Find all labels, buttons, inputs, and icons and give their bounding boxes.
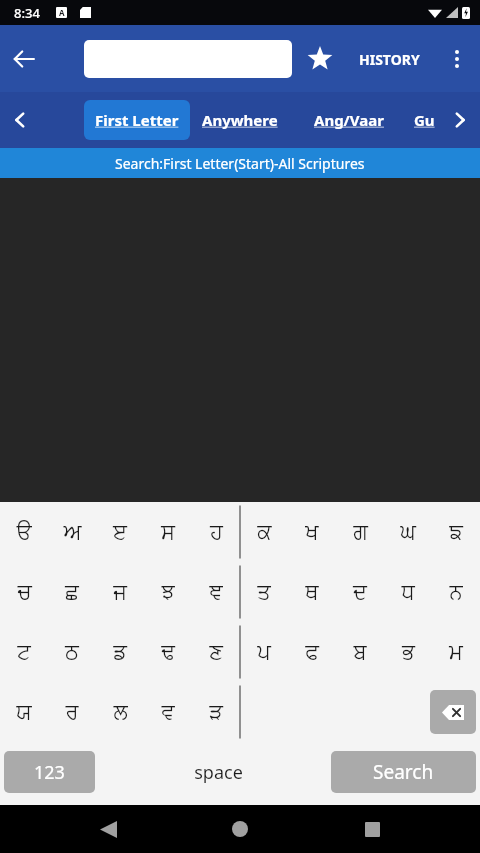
button[interactable]: ੲ: [96, 502, 144, 562]
button[interactable]: ਡ: [96, 622, 144, 682]
staticText: HISTORY: [359, 50, 420, 69]
button[interactable]: [84, 40, 292, 78]
button[interactable]: HISTORY: [344, 35, 434, 83]
button[interactable]: Previous tabs: [0, 100, 40, 140]
staticText: ਜ: [113, 582, 127, 603]
staticText: space: [194, 760, 243, 785]
button: [384, 682, 432, 742]
staticText: ਨ: [449, 582, 463, 603]
staticText: ਕ: [257, 522, 272, 543]
button[interactable]: ਪ: [240, 622, 288, 682]
staticText: ਹ: [210, 522, 223, 543]
button[interactable]: More options: [434, 36, 480, 82]
button[interactable]: ਥ: [288, 562, 336, 622]
staticText: Ang/Vaar: [314, 110, 384, 130]
button[interactable]: ਢ: [144, 622, 192, 682]
staticText: ਦ: [353, 582, 367, 603]
button[interactable]: ਖ: [288, 502, 336, 562]
button[interactable]: ਤ: [240, 562, 288, 622]
button[interactable]: 123: [4, 751, 95, 793]
button[interactable]: ਗ: [336, 502, 384, 562]
button[interactable]: ੜ: [192, 682, 240, 742]
button[interactable]: Search:First Letter(Start)-All Scripture…: [0, 148, 480, 178]
button[interactable]: ੳ: [0, 502, 48, 562]
button[interactable]: Search: [331, 751, 476, 793]
button: [240, 682, 288, 742]
button[interactable]: ਹ: [192, 502, 240, 562]
staticText: ਞ: [209, 582, 223, 603]
button[interactable]: ਘ: [384, 502, 432, 562]
button[interactable]: ਮ: [432, 622, 480, 682]
staticText: Search: [373, 759, 434, 785]
button[interactable]: ਰ: [48, 682, 96, 742]
button[interactable]: Favorites: [298, 37, 342, 81]
staticText: ਖ: [305, 522, 319, 543]
button[interactable]: ਬ: [336, 622, 384, 682]
staticText: A: [59, 7, 65, 18]
staticText: ਰ: [65, 702, 79, 723]
button[interactable]: ਭ: [384, 622, 432, 682]
button[interactable]: Anywhere: [190, 100, 290, 140]
button[interactable]: ਣ: [192, 622, 240, 682]
button[interactable]: ਟ: [0, 622, 48, 682]
button[interactable]: ਧ: [384, 562, 432, 622]
staticText: ਸ: [161, 522, 175, 543]
staticText: ਣ: [209, 642, 223, 663]
staticText: ਪ: [257, 642, 271, 663]
staticText: ੲ: [113, 522, 127, 543]
staticText: 8:34: [14, 4, 40, 22]
button[interactable]: space: [118, 748, 318, 796]
staticText: ਤ: [257, 582, 271, 603]
button[interactable]: ਯ: [0, 682, 48, 742]
button[interactable]: ਸ: [144, 502, 192, 562]
staticText: ਟ: [17, 642, 31, 663]
button[interactable]: ਞ: [192, 562, 240, 622]
button[interactable]: ਵ: [144, 682, 192, 742]
staticText: ਡ: [113, 642, 127, 663]
staticText: ੜ: [209, 702, 223, 723]
button[interactable]: Back: [0, 35, 48, 83]
staticText: Gu: [414, 110, 435, 130]
staticText: First Letter: [95, 110, 179, 130]
button[interactable]: Ang/Vaar: [302, 100, 396, 140]
button[interactable]: ਙ: [432, 502, 480, 562]
button[interactable]: Backspace: [430, 690, 476, 734]
button[interactable]: First Letter: [84, 100, 190, 140]
button[interactable]: ਝ: [144, 562, 192, 622]
staticText: ਭ: [402, 642, 415, 663]
staticText: ਛ: [65, 582, 79, 603]
staticText: Search:First Letter(Start)-All Scripture…: [115, 154, 365, 173]
button[interactable]: ਚ: [0, 562, 48, 622]
button[interactable]: Back: [84, 805, 132, 853]
staticText: Anywhere: [202, 110, 278, 130]
staticText: ਘ: [400, 522, 416, 543]
button[interactable]: Next tabs: [440, 100, 480, 140]
button[interactable]: ਨ: [432, 562, 480, 622]
staticText: ਬ: [353, 642, 367, 663]
staticText: ਫ: [305, 642, 319, 663]
button[interactable]: ਛ: [48, 562, 96, 622]
staticText: ਙ: [449, 522, 463, 543]
button[interactable]: ਜ: [96, 562, 144, 622]
staticText: ਗ: [353, 522, 368, 543]
button[interactable]: ਕ: [240, 502, 288, 562]
button[interactable]: ਲ: [96, 682, 144, 742]
button[interactable]: ਦ: [336, 562, 384, 622]
button[interactable]: ਠ: [48, 622, 96, 682]
staticText: 123: [34, 760, 65, 785]
staticText: ਅ: [63, 522, 82, 543]
staticText: ਮ: [449, 642, 463, 663]
staticText: ਧ: [401, 582, 415, 603]
staticText: ਚ: [17, 582, 32, 603]
button[interactable]: Home: [216, 805, 264, 853]
staticText: ਠ: [65, 642, 79, 663]
button[interactable]: ਫ: [288, 622, 336, 682]
button[interactable]: ਅ: [48, 502, 96, 562]
staticText: ਥ: [305, 582, 319, 603]
button[interactable]: Gu: [414, 100, 435, 140]
staticText: ਝ: [161, 582, 175, 603]
button[interactable]: Recent apps: [348, 805, 396, 853]
staticText: ਯ: [16, 702, 32, 723]
